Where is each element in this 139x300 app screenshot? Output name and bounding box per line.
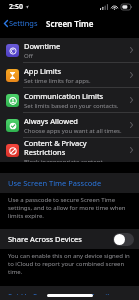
button[interactable]: Content & Privacy Restrictions (0, 138, 139, 162)
staticText: Set Up Screen Time for Family (8, 291, 114, 295)
staticText: Downtime (24, 41, 61, 51)
staticText: Always Allowed (24, 116, 78, 126)
staticText: Set time limits for apps. (24, 77, 91, 85)
button[interactable]: Always Allowed (0, 113, 139, 137)
button[interactable]: Downtime (0, 38, 139, 62)
button[interactable]: App Limits (0, 63, 139, 87)
button[interactable]: Set Up Screen Time for Family (0, 286, 139, 300)
staticText: Choose apps you want at all times. (24, 127, 122, 135)
button[interactable]: Share Across Devices (0, 229, 139, 249)
staticText: App Limits (24, 66, 62, 76)
staticText: You can enable this on any device signed… (8, 252, 131, 276)
staticText: Communication Limits (24, 91, 104, 101)
staticText: Use Screen Time Passcode (8, 178, 102, 188)
staticText: 2:50 (9, 2, 23, 12)
staticText: Content & Privacy Restrictions (24, 138, 127, 157)
staticText: Screen Time (46, 18, 94, 29)
staticText: Use a passcode to secure Screen Time set… (8, 196, 131, 220)
staticText: Share Across Devices (8, 234, 113, 244)
staticText: Settings (9, 18, 38, 28)
staticText: Block inappropriate content. (24, 158, 105, 162)
staticText: Set limits based on your contacts. (24, 102, 119, 110)
button[interactable]: Use Screen Time Passcode (0, 173, 139, 193)
button[interactable]: Share Across Devices toggle (113, 233, 134, 246)
button[interactable]: Settings (0, 16, 42, 30)
button[interactable]: Communication Limits (0, 88, 139, 112)
staticText: Off (24, 52, 33, 60)
